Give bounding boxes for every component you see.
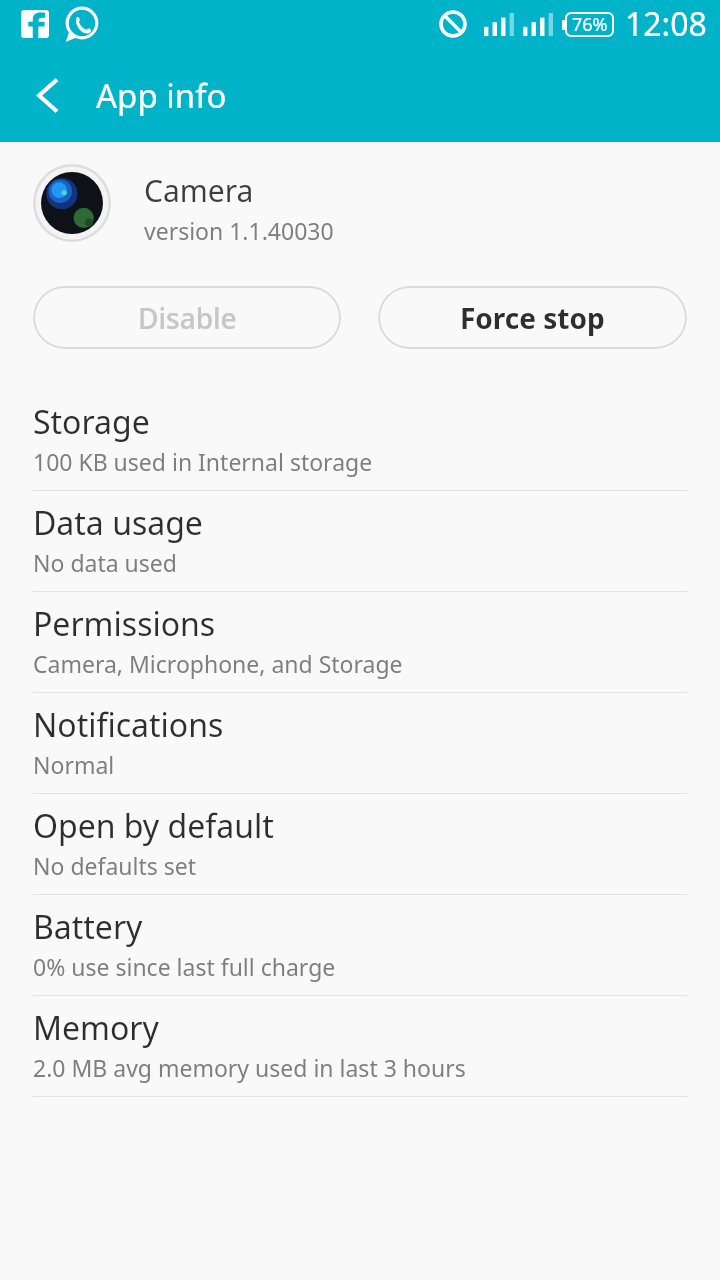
staticText: 12:08 <box>625 2 707 46</box>
button[interactable]: Disable <box>33 286 341 349</box>
staticText: 2.0 MB avg memory used in last 3 hours <box>33 1052 466 1083</box>
button[interactable]: Memory <box>0 996 720 1097</box>
button[interactable]: Notifications <box>0 693 720 794</box>
button[interactable]: Data usage <box>0 491 720 592</box>
button[interactable]: Force stop <box>378 286 687 349</box>
staticText: Storage <box>33 400 150 444</box>
button[interactable] <box>16 64 78 126</box>
staticText: Camera, Microphone, and Storage <box>33 648 403 679</box>
staticText: Open by default <box>33 804 274 848</box>
staticText: 0% use since last full charge <box>33 951 336 982</box>
staticText: Data usage <box>33 501 203 545</box>
staticText: App info <box>96 73 227 118</box>
staticText: No data used <box>33 547 177 578</box>
button[interactable]: Storage <box>0 390 720 491</box>
staticText: Permissions <box>33 602 216 646</box>
button[interactable]: Open by default <box>0 794 720 895</box>
staticText: version 1.1.40030 <box>144 215 334 246</box>
staticText: Disable <box>138 299 237 337</box>
button[interactable]: Battery <box>0 895 720 996</box>
button[interactable]: Permissions <box>0 592 720 693</box>
staticText: 100 KB used in Internal storage <box>33 446 373 477</box>
staticText: Memory <box>33 1006 159 1050</box>
staticText: Notifications <box>33 703 224 747</box>
staticText: Battery <box>33 905 143 949</box>
staticText: 76% <box>572 12 608 37</box>
staticText: Camera <box>144 170 254 211</box>
staticText: No defaults set <box>33 850 197 881</box>
staticText: Normal <box>33 749 115 780</box>
staticText: Force stop <box>460 299 605 337</box>
